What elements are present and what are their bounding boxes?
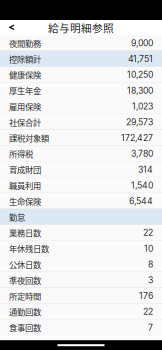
staticText: 所得税 xyxy=(9,148,33,160)
staticText: 172,427 xyxy=(121,133,153,143)
staticText: 生命保険 xyxy=(9,195,41,207)
staticText: 食事回数 xyxy=(9,321,41,333)
button[interactable]: 夜間勤務 xyxy=(0,35,162,51)
staticText: 3 xyxy=(148,275,153,285)
button[interactable]: 勤怠 xyxy=(0,209,162,225)
staticText: 3,780 xyxy=(131,148,153,159)
staticText: 社保合計 xyxy=(9,116,41,128)
button[interactable]: 控除額計 xyxy=(0,51,162,67)
staticText: 1,023 xyxy=(132,101,153,112)
button[interactable]: 雇用保険 xyxy=(0,98,162,114)
staticText: 1,540 xyxy=(131,180,153,191)
staticText: 給与明細参照 xyxy=(48,20,114,35)
button[interactable]: 所定時間 xyxy=(0,288,162,304)
staticText: 職員利用 xyxy=(9,179,41,191)
staticText: 41,751 xyxy=(128,54,153,64)
staticText: 22 xyxy=(143,306,153,317)
staticText: 9,000 xyxy=(131,38,153,48)
staticText: 公休日数 xyxy=(9,258,41,270)
button[interactable]: 所得税 xyxy=(0,146,162,162)
staticText: 7 xyxy=(148,322,153,333)
button[interactable]: 生命保険 xyxy=(0,193,162,209)
staticText: 10 xyxy=(144,243,153,254)
staticText: 健康保険 xyxy=(9,69,41,81)
staticText: 夜間勤務 xyxy=(9,37,41,49)
button[interactable]: 通勤回数 xyxy=(0,304,162,320)
staticText: 準夜回数 xyxy=(9,274,41,286)
staticText: 所定時間 xyxy=(9,290,41,302)
button[interactable]: 食事回数 xyxy=(0,320,162,335)
button[interactable]: 厚生年金 xyxy=(0,83,162,98)
staticText: 育成財団 xyxy=(9,163,41,175)
staticText: 10,250 xyxy=(127,69,153,80)
button[interactable]: 健康保険 xyxy=(0,67,162,83)
staticText: 厚生年金 xyxy=(9,84,41,96)
staticText: 6,544 xyxy=(129,196,153,206)
button[interactable]: 育成財団 xyxy=(0,162,162,177)
staticText: 勤怠 xyxy=(9,211,25,223)
staticText: 雇用保険 xyxy=(9,100,41,112)
button[interactable]: 準夜回数 xyxy=(0,272,162,288)
staticText: 控除額計 xyxy=(9,53,41,65)
staticText: 通勤回数 xyxy=(9,306,41,318)
staticText: 8 xyxy=(148,259,153,270)
staticText: 22 xyxy=(143,227,153,238)
button[interactable]: 社保合計 xyxy=(0,114,162,130)
staticText: 課税対象額 xyxy=(9,132,49,144)
button[interactable]: 公休日数 xyxy=(0,256,162,272)
button[interactable]: Back xyxy=(0,20,33,35)
staticText: 18,300 xyxy=(127,85,153,96)
staticText: 年休残日数 xyxy=(9,242,49,254)
button[interactable]: 業務日数 xyxy=(0,225,162,241)
button[interactable]: 年休残日数 xyxy=(0,241,162,256)
button[interactable]: 職員利用 xyxy=(0,177,162,193)
button[interactable]: 課税対象額 xyxy=(0,130,162,146)
staticText: 176 xyxy=(139,291,153,301)
staticText: 29,573 xyxy=(126,117,153,127)
staticText: 314 xyxy=(138,164,153,175)
staticText: 業務日数 xyxy=(9,227,41,239)
